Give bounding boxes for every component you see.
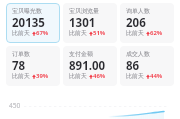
staticText: 宝贝曝光数 [12, 7, 42, 15]
staticText: 20135 [12, 15, 45, 31]
staticText: 比前天 [12, 29, 32, 37]
staticText: 比前天 [12, 72, 32, 80]
staticText: 支付金额 [69, 50, 93, 58]
staticText: 450 [9, 101, 21, 110]
staticText: 比前天 [69, 72, 89, 80]
other: Up [32, 74, 36, 79]
button[interactable]: 宝贝浏览量 [63, 3, 117, 43]
staticText: 46% [93, 72, 106, 80]
staticText: 订单数 [12, 50, 30, 58]
other: Up [146, 31, 150, 36]
staticText: 206 [126, 15, 146, 31]
button[interactable]: 宝贝曝光数 [6, 3, 60, 43]
other: Up [146, 74, 150, 79]
button[interactable]: 订单数 [6, 46, 60, 86]
staticText: 比前天 [126, 29, 146, 37]
staticText: 成交人数 [126, 50, 150, 58]
staticText: 78 [12, 58, 26, 74]
button[interactable]: 询单人数 [120, 3, 174, 43]
button[interactable]: 支付金额 [63, 46, 117, 86]
staticText: 86 [126, 58, 140, 74]
other: Up [32, 31, 36, 36]
staticText: 39% [36, 72, 49, 80]
button[interactable]: 成交人数 [120, 46, 174, 86]
staticText: 51% [93, 29, 106, 37]
staticText: 比前天 [69, 29, 89, 37]
staticText: 62% [150, 29, 163, 37]
other: Trend chart [0, 86, 180, 119]
other: Up [89, 31, 93, 36]
staticText: 44% [150, 72, 163, 80]
staticText: 询单人数 [126, 7, 150, 15]
staticText: 891.00 [69, 58, 106, 74]
staticText: 比前天 [126, 72, 146, 80]
staticText: 宝贝浏览量 [69, 7, 99, 15]
other: Up [89, 74, 93, 79]
staticText: 1301 [69, 15, 96, 31]
staticText: 67% [36, 29, 49, 37]
